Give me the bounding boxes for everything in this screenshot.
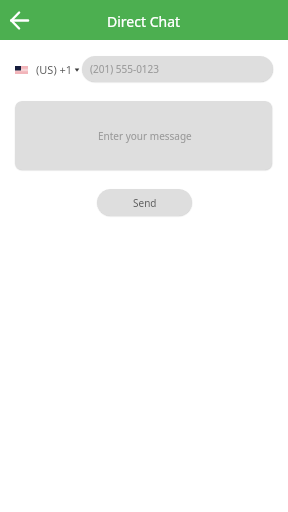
button[interactable]: (201) 555-0123 [82,56,273,82]
staticText: Direct Chat [107,12,181,31]
staticText: Send [133,196,157,210]
staticText: (201) 555-0123 [90,62,160,76]
staticText: (US) +1 [36,62,73,77]
button[interactable]: Back [0,1,38,39]
staticText: Enter your message [98,129,192,143]
button[interactable]: Send [97,189,192,216]
button[interactable]: (US) +1 [14,62,80,77]
button[interactable]: Enter your message [15,101,272,170]
